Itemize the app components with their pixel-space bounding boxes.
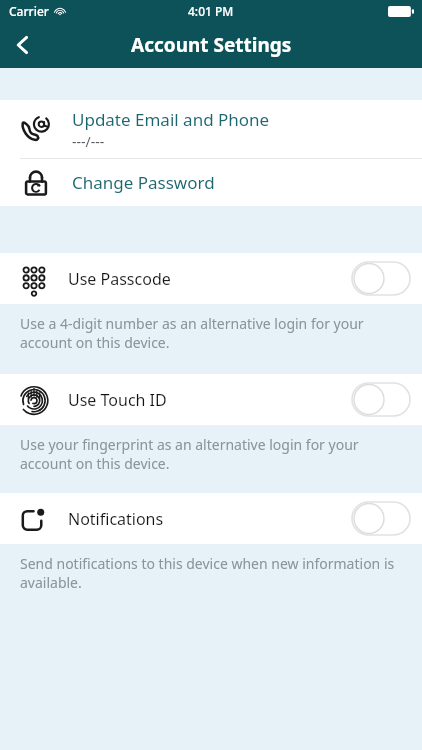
staticText: Update Email and Phone xyxy=(72,108,270,131)
staticText: Account Settings xyxy=(131,32,292,58)
staticText: Use Touch ID xyxy=(68,389,352,411)
staticText: Use a 4-digit number as an alternative l… xyxy=(20,314,398,352)
staticText: Notifications xyxy=(68,508,352,530)
button[interactable] xyxy=(352,383,410,416)
button[interactable] xyxy=(352,502,410,535)
staticText: Use your fingerprint as an alternative l… xyxy=(20,435,398,473)
staticText: Change Password xyxy=(72,171,215,194)
button[interactable] xyxy=(352,262,410,295)
button[interactable]: Use Touch ID xyxy=(0,374,422,425)
button[interactable]: Update Email and Phone xyxy=(0,100,422,158)
staticText: Carrier xyxy=(9,3,49,19)
button[interactable]: Back xyxy=(0,22,46,68)
staticText: Send notifications to this device when n… xyxy=(20,554,398,592)
staticText: 4:01 PM xyxy=(188,3,234,19)
button[interactable]: Use Passcode xyxy=(0,253,422,304)
staticText: ---/--- xyxy=(72,132,105,151)
button[interactable]: Change Password xyxy=(0,159,422,206)
staticText: Use Passcode xyxy=(68,268,352,290)
button[interactable]: Notifications xyxy=(0,493,422,544)
